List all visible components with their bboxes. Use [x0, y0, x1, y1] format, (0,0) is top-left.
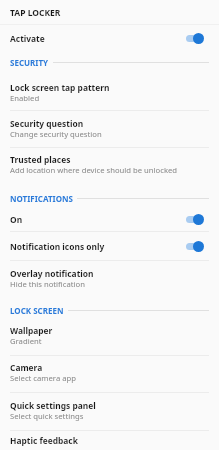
staticText: SECURITY [10, 57, 49, 68]
staticText: Wallpaper [10, 325, 53, 336]
staticText: Activate [10, 33, 45, 44]
staticText: Change security question [10, 129, 102, 139]
button[interactable]: On [0, 207, 219, 232]
staticText: Quick settings panel [10, 400, 96, 411]
staticText: Select camera app [10, 373, 76, 383]
staticText: Lock screen tap pattern [10, 82, 110, 93]
button[interactable]: Wallpaper [0, 317, 219, 356]
staticText: Hide this notification [10, 279, 85, 289]
button[interactable]: Notification icons only [0, 232, 219, 261]
button[interactable]: Lock screen tap pattern [0, 75, 219, 111]
button[interactable]: Camera [0, 356, 219, 393]
staticText: Gradient [10, 336, 42, 346]
staticText: TAP LOCKER [10, 7, 61, 19]
button[interactable]: Activate [0, 25, 219, 52]
staticText: Notification icons only [10, 241, 105, 252]
staticText: Overlay notification [10, 268, 94, 279]
button[interactable]: Quick settings panel [0, 393, 219, 431]
staticText: Security question [10, 118, 84, 129]
staticText: NOTIFICATIONS [10, 193, 73, 204]
staticText: Trusted places [10, 154, 71, 165]
button[interactable]: Overlay notification [0, 261, 219, 297]
button[interactable]: Security question [0, 111, 219, 148]
staticText: LOCK SCREEN [10, 305, 64, 316]
button[interactable]: Trusted places [0, 148, 219, 184]
staticText: Camera [10, 362, 43, 373]
button[interactable]: Haptic feedback [0, 431, 219, 450]
staticText: Enabled [10, 93, 40, 103]
staticText: Select quick settings [10, 411, 84, 421]
staticText: On [10, 214, 23, 225]
staticText: Add location where device should be unlo… [10, 165, 178, 175]
staticText: Haptic feedback [10, 435, 78, 446]
